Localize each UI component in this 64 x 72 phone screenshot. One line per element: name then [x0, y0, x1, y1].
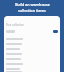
staticText: Build an warehouse	[15, 2, 50, 7]
button[interactable]: Search	[6, 30, 15, 33]
staticText: collection items	[18, 8, 46, 13]
button[interactable]	[4, 56, 60, 61]
button[interactable]	[4, 61, 60, 66]
staticText: Your collection	[6, 23, 24, 27]
button[interactable]	[4, 71, 60, 72]
button[interactable]	[4, 46, 60, 51]
button[interactable]	[4, 36, 60, 41]
button[interactable]	[4, 51, 60, 56]
button[interactable]	[4, 66, 60, 71]
button[interactable]: Add	[53, 30, 58, 33]
button[interactable]	[4, 41, 60, 46]
